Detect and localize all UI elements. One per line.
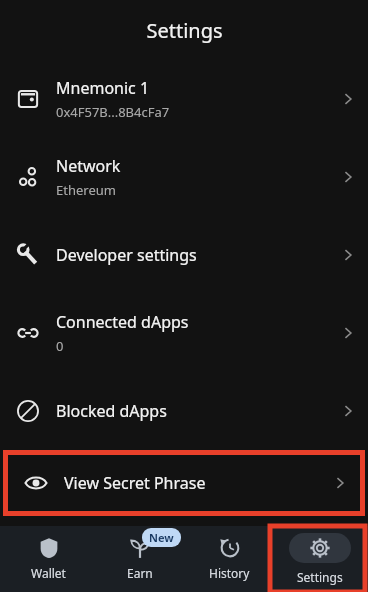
staticText: Wallet xyxy=(31,565,66,581)
staticText: Network xyxy=(56,155,121,177)
staticText: Developer settings xyxy=(56,244,197,266)
button[interactable]: Developer settings xyxy=(0,216,368,294)
staticText: Settings xyxy=(146,17,223,44)
staticText: 0 xyxy=(56,337,64,355)
staticText: Connected dApps xyxy=(56,311,189,333)
button[interactable]: Blocked dApps xyxy=(0,372,368,450)
staticText: Settings xyxy=(297,569,343,585)
staticText: View Secret Phrase xyxy=(64,472,206,494)
button[interactable]: Wallet xyxy=(6,526,90,592)
button[interactable]: Connected dApps xyxy=(0,294,368,372)
staticText: Blocked dApps xyxy=(56,400,167,422)
staticText: History xyxy=(209,565,250,581)
button[interactable]: History xyxy=(187,526,271,592)
staticText: Earn xyxy=(127,565,153,581)
button[interactable]: Mnemonic 1 xyxy=(0,60,368,138)
staticText: 0x4F57B...8B4cFa7 xyxy=(56,103,170,121)
button[interactable]: Settings xyxy=(278,526,362,592)
staticText: Ethereum xyxy=(56,181,116,199)
button[interactable]: Network xyxy=(0,138,368,216)
button[interactable]: View Secret Phrase xyxy=(8,455,360,511)
button[interactable]: New xyxy=(97,526,181,592)
staticText: Mnemonic 1 xyxy=(56,77,150,99)
staticText: New xyxy=(149,530,174,545)
